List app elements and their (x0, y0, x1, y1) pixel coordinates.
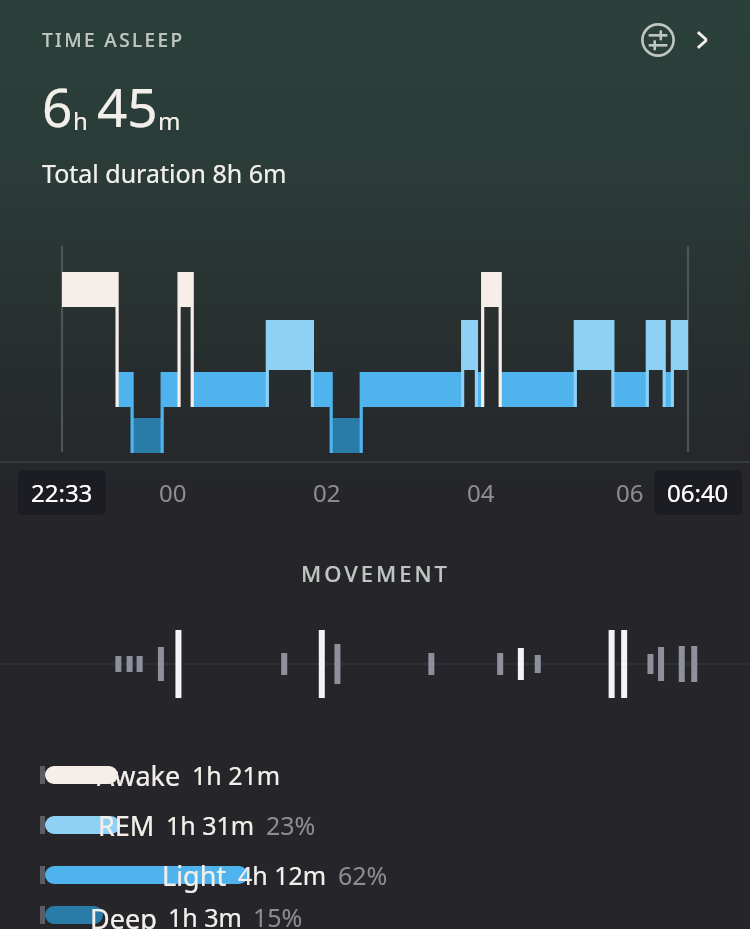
staticText: 00 (159, 476, 187, 509)
button[interactable]: REM (0, 800, 750, 850)
button[interactable]: Awake (0, 750, 750, 800)
staticText: 23% (266, 808, 316, 842)
staticText: TIME ASLEEP (42, 27, 185, 53)
staticText: Light (162, 857, 227, 894)
staticText: 6 (42, 70, 73, 142)
staticText: 06 (616, 476, 644, 509)
staticText: m (158, 104, 181, 137)
staticText: REM (98, 807, 155, 844)
staticText: 1h 3m (168, 900, 242, 929)
staticText: 06:40 (667, 476, 729, 509)
staticText: Awake (97, 757, 181, 794)
staticText: 1h 21m (192, 758, 281, 792)
staticText: 02 (313, 476, 341, 509)
staticText: 04 (467, 476, 495, 509)
staticText: MOVEMENT (301, 558, 450, 588)
staticText: 1h 31m (166, 808, 255, 842)
staticText: Deep (90, 900, 157, 929)
staticText: 15% (253, 900, 303, 929)
staticText: h (73, 104, 88, 137)
button[interactable]: Deep (0, 900, 750, 929)
button[interactable]: Light (0, 850, 750, 900)
staticText: 4h 12m (238, 858, 327, 892)
staticText: Total duration 8h 6m (42, 156, 287, 190)
staticText: 45 (97, 70, 158, 142)
staticText: 22:33 (31, 476, 93, 509)
staticText: 62% (338, 858, 388, 892)
button[interactable]: Open sleep details (680, 18, 724, 62)
button[interactable]: Sleep settings (636, 18, 680, 62)
